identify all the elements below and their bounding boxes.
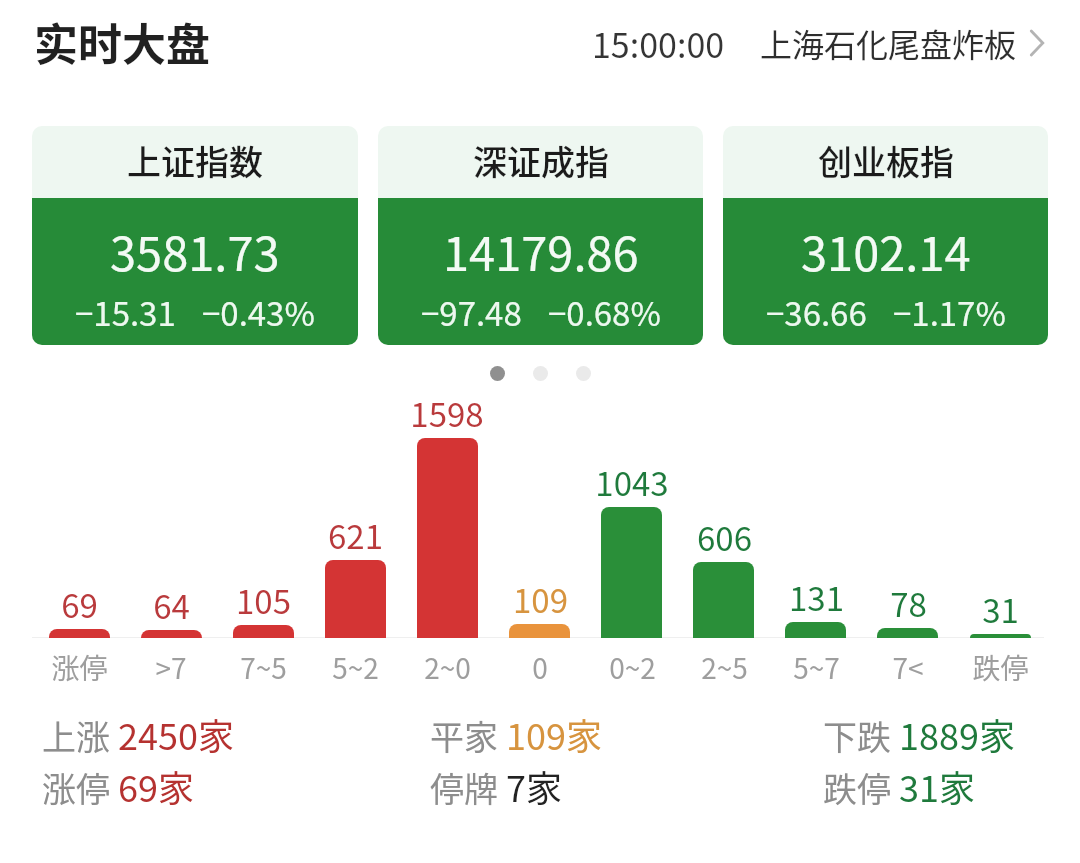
staticText: 上海石化尾盘炸板: [760, 20, 1017, 66]
staticText: >7: [155, 647, 187, 688]
staticText: 5~7: [793, 647, 840, 688]
staticText: 1889家: [899, 708, 1015, 760]
staticText: 31家: [899, 760, 975, 812]
staticText: 7<: [892, 647, 924, 688]
staticText: −1.17%: [893, 288, 1006, 336]
button[interactable]: 涨停 69: [33, 388, 125, 682]
button[interactable]: 0~2 1043: [586, 388, 678, 682]
staticText: 78: [890, 579, 927, 627]
staticText: 7家: [506, 760, 562, 812]
button[interactable]: 创业板指: [723, 126, 1048, 345]
staticText: 7~5: [240, 647, 287, 688]
button[interactable]: 2~5 606: [678, 388, 770, 682]
button[interactable]: 7~5 105: [217, 388, 309, 682]
staticText: 跌停: [823, 763, 899, 812]
button[interactable]: 2~0 1598: [401, 388, 493, 682]
staticText: −36.66: [766, 288, 867, 336]
button[interactable]: 上证指数: [32, 126, 358, 345]
staticText: 109家: [506, 708, 602, 760]
button[interactable]: 第3页: [576, 366, 591, 381]
button[interactable]: 跌停: [823, 760, 975, 812]
staticText: 0~2: [609, 647, 656, 688]
staticText: 606: [697, 513, 752, 561]
staticText: 下跌: [823, 711, 899, 760]
staticText: 涨停: [42, 763, 118, 812]
staticText: 105: [236, 576, 291, 624]
staticText: 上证指数: [127, 136, 263, 185]
button[interactable]: 实时大盘: [34, 10, 210, 74]
button[interactable]: 停牌: [430, 760, 562, 812]
button[interactable]: 涨停: [42, 760, 194, 812]
button[interactable]: 5~7 131: [770, 388, 862, 682]
button[interactable]: 下跌: [823, 708, 1015, 760]
staticText: 创业板指: [818, 136, 954, 185]
staticText: 2~5: [701, 647, 748, 688]
button[interactable]: >7 64: [125, 388, 217, 682]
staticText: −97.48: [421, 288, 522, 336]
staticText: 69家: [118, 760, 194, 812]
staticText: 31: [982, 585, 1019, 633]
button[interactable]: 第1页: [490, 366, 505, 381]
staticText: 131: [789, 573, 844, 621]
staticText: 109: [513, 575, 568, 623]
staticText: 5~2: [332, 647, 379, 688]
staticText: 621: [328, 511, 383, 559]
staticText: 深证成指: [473, 136, 609, 185]
staticText: 0: [532, 647, 548, 688]
button[interactable]: 第2页: [533, 366, 548, 381]
staticText: 15:00:00: [592, 19, 725, 68]
staticText: 涨停: [51, 647, 108, 688]
staticText: 停牌: [430, 763, 506, 812]
staticText: 2450家: [118, 708, 234, 760]
button[interactable]: 上涨: [42, 708, 234, 760]
staticText: 跌停: [972, 647, 1029, 688]
staticText: 69: [61, 580, 98, 628]
other: 查看详情: [1017, 23, 1051, 63]
staticText: 2~0: [424, 647, 471, 688]
staticText: 14179.86: [443, 216, 639, 284]
staticText: 3581.73: [110, 216, 280, 284]
staticText: −0.43%: [202, 288, 315, 336]
staticText: 上涨: [42, 711, 118, 760]
button[interactable]: 15:00:00: [580, 14, 1060, 72]
button[interactable]: 跌停 31: [954, 388, 1046, 682]
staticText: −15.31: [75, 288, 176, 336]
staticText: −0.68%: [548, 288, 661, 336]
staticText: 1598: [410, 389, 484, 437]
button[interactable]: 深证成指: [378, 126, 703, 345]
button[interactable]: 7< 78: [862, 388, 954, 682]
staticText: 实时大盘: [34, 10, 210, 74]
staticText: 1043: [595, 458, 669, 506]
staticText: 64: [153, 581, 190, 629]
staticText: 3102.14: [801, 216, 971, 284]
staticText: 平家: [430, 711, 506, 760]
button[interactable]: 0 109: [493, 388, 585, 682]
button[interactable]: 5~2 621: [309, 388, 401, 682]
button[interactable]: 平家: [430, 708, 602, 760]
